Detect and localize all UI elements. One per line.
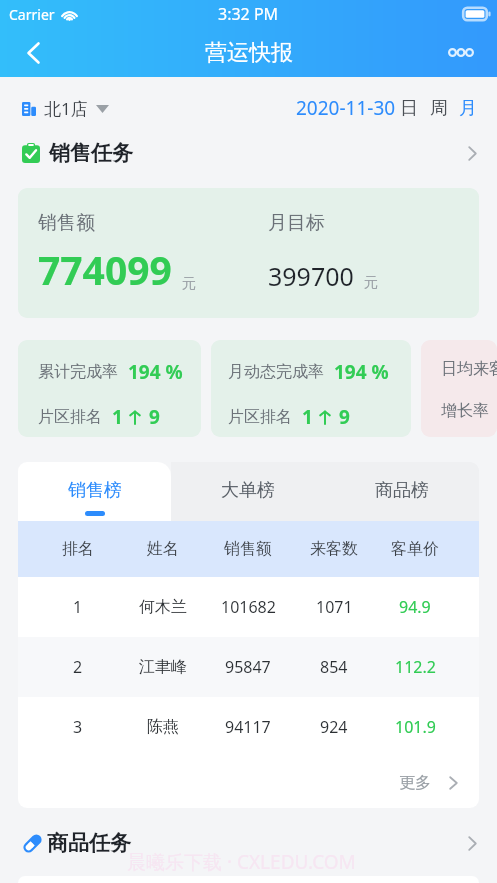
- staticText: 销售任务: [49, 140, 133, 166]
- staticText: 大单榜: [221, 479, 275, 502]
- staticText: 元: [182, 275, 196, 293]
- button[interactable]: 月动态完成率: [211, 340, 411, 437]
- button[interactable]: 大单榜: [171, 462, 325, 521]
- staticText: 101682: [221, 596, 276, 618]
- staticText: 销售额: [38, 211, 95, 235]
- staticText: 增长率: [441, 401, 489, 421]
- staticText: 112.2: [395, 656, 436, 678]
- staticText: 194 %: [128, 359, 183, 385]
- staticText: 销售榜: [68, 479, 122, 502]
- button[interactable]: 北1店: [22, 97, 109, 120]
- staticText: 1: [73, 596, 83, 618]
- staticText: 854: [320, 656, 348, 678]
- staticText: 姓名: [147, 539, 179, 559]
- staticText: 1: [302, 404, 313, 430]
- button[interactable]: 销售任务: [22, 139, 477, 167]
- staticText: 194 %: [334, 359, 389, 385]
- button[interactable]: 周: [430, 97, 448, 120]
- staticText: 月目标: [268, 211, 325, 235]
- staticText: 2: [73, 656, 83, 678]
- staticText: 399700: [268, 259, 354, 293]
- staticText: 商品榜: [375, 479, 429, 502]
- button[interactable]: Back: [0, 28, 66, 77]
- staticText: 9: [339, 404, 350, 430]
- button[interactable]: 2: [18, 637, 479, 697]
- button[interactable]: 商品榜: [325, 462, 479, 521]
- staticText: 3:32 PM: [218, 3, 279, 25]
- button[interactable]: 2020-11-30: [296, 95, 396, 121]
- staticText: 元: [364, 274, 378, 292]
- button[interactable]: 3: [18, 697, 479, 757]
- staticText: 周: [430, 97, 448, 120]
- staticText: 客单价: [391, 539, 439, 559]
- staticText: 江聿峰: [139, 657, 187, 677]
- staticText: 1071: [316, 596, 353, 618]
- staticText: 片区排名: [228, 407, 292, 427]
- staticText: 销售额: [224, 539, 272, 559]
- staticText: 101.9: [395, 716, 436, 738]
- button[interactable]: 累计完成率: [18, 340, 201, 437]
- staticText: 3: [73, 716, 83, 738]
- button[interactable]: 销售额: [18, 188, 479, 318]
- staticText: 月: [459, 97, 477, 120]
- staticText: 营运快报: [205, 39, 293, 67]
- staticText: Carrier: [9, 5, 55, 24]
- staticText: 何木兰: [139, 597, 187, 617]
- staticText: 月动态完成率: [228, 362, 324, 382]
- staticText: 商品任务: [47, 830, 131, 856]
- staticText: 2020-11-30: [296, 95, 396, 121]
- button[interactable]: 更多: [18, 757, 458, 808]
- staticText: 9: [149, 404, 160, 430]
- staticText: 片区排名: [38, 407, 102, 427]
- staticText: 来客数: [310, 539, 358, 559]
- staticText: 94117: [225, 716, 271, 738]
- button[interactable]: 日均来客数: [421, 340, 497, 437]
- button[interactable]: 日: [400, 97, 418, 120]
- button[interactable]: 排名: [18, 521, 479, 577]
- staticText: 陈燕: [147, 717, 179, 737]
- staticText: 1: [112, 404, 123, 430]
- staticText: 774099: [38, 243, 172, 296]
- button[interactable]: 月: [459, 97, 477, 120]
- button[interactable]: More options: [425, 28, 497, 77]
- staticText: 924: [320, 716, 348, 738]
- staticText: 累计完成率: [38, 362, 118, 382]
- staticText: 95847: [225, 656, 271, 678]
- button[interactable]: 商品任务: [22, 829, 477, 857]
- button[interactable]: 销售榜: [18, 462, 171, 521]
- staticText: 排名: [62, 539, 94, 559]
- staticText: 94.9: [399, 596, 431, 618]
- staticText: 日: [400, 97, 418, 120]
- staticText: 北1店: [44, 97, 88, 120]
- staticText: 日均来客数: [441, 359, 497, 379]
- staticText: 晨曦乐下载 · CXLEDU.COM: [127, 849, 356, 875]
- staticText: 更多: [399, 773, 431, 793]
- button[interactable]: 1: [18, 577, 479, 637]
